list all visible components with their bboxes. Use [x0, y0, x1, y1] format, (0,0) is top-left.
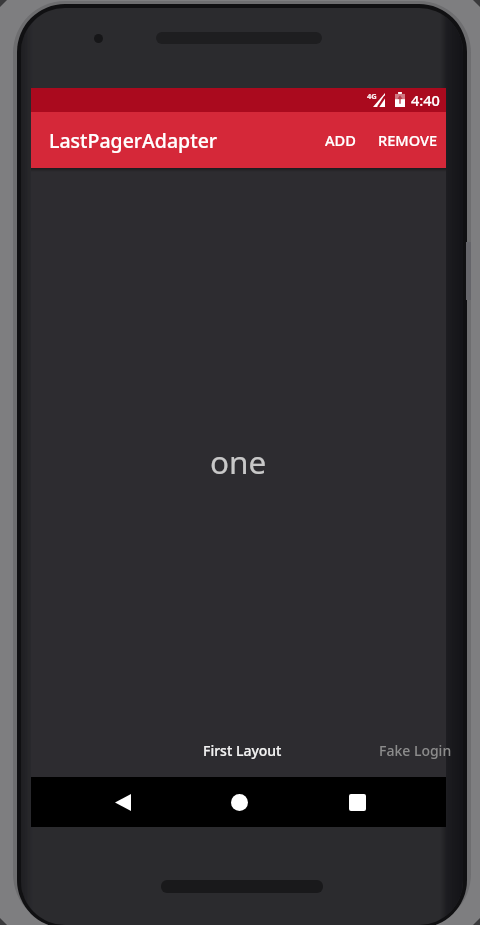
staticText: REMOVE — [378, 130, 438, 150]
button[interactable]: Home — [214, 777, 264, 827]
staticText: LastPagerAdapter — [49, 127, 218, 154]
button[interactable]: Recent apps — [332, 777, 382, 827]
staticText: 4G — [367, 91, 377, 101]
staticText: 4:40 — [411, 90, 440, 110]
button[interactable]: First Layout — [203, 741, 282, 760]
button[interactable]: Fake Login — [379, 741, 452, 760]
staticText: one — [210, 440, 267, 483]
staticText: ADD — [325, 130, 356, 150]
staticText: Fake Login — [379, 741, 452, 760]
staticText: First Layout — [203, 741, 282, 760]
button[interactable]: Back — [98, 777, 148, 827]
button[interactable]: ADD — [311, 120, 365, 160]
button[interactable]: REMOVE — [365, 120, 446, 160]
